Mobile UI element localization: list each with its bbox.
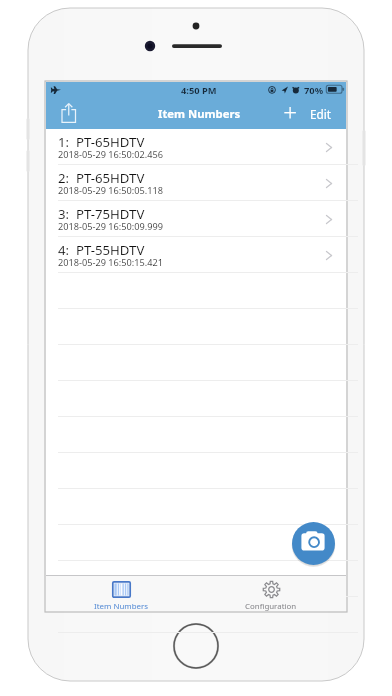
button[interactable]: Add item — [276, 99, 304, 129]
staticText: 4: PT-55HDTV — [58, 241, 145, 259]
button[interactable]: Share — [50, 99, 80, 129]
staticText: Configuration — [245, 601, 297, 612]
button[interactable]: 1: PT-65HDTV — [46, 129, 346, 165]
staticText: 2018-05-29 16:50:05.118 — [58, 184, 164, 197]
button[interactable]: Configuration — [196, 576, 346, 611]
staticText: 70% — [304, 84, 324, 97]
staticText: Item Numbers — [94, 601, 148, 612]
staticText: Edit — [310, 106, 332, 122]
staticText: 4:50 PM — [181, 84, 217, 97]
staticText: 3: PT-75HDTV — [58, 205, 145, 223]
button[interactable]: 3: PT-75HDTV — [46, 201, 346, 237]
staticText: Item Numbers — [158, 106, 241, 121]
button[interactable]: 4: PT-55HDTV — [46, 237, 346, 273]
staticText: 1: PT-65HDTV — [58, 133, 145, 151]
button[interactable]: 2: PT-65HDTV — [46, 165, 346, 201]
staticText: 2: PT-65HDTV — [58, 169, 145, 187]
staticText: 2018-05-29 16:50:09.999 — [58, 220, 164, 233]
staticText: 2018-05-29 16:50:02.456 — [58, 148, 164, 161]
button[interactable]: Scan barcode with camera — [292, 522, 335, 565]
button[interactable]: Item Numbers — [46, 576, 196, 611]
staticText: 2018-05-29 16:50:15.421 — [58, 256, 164, 269]
button[interactable]: Edit — [305, 99, 337, 129]
